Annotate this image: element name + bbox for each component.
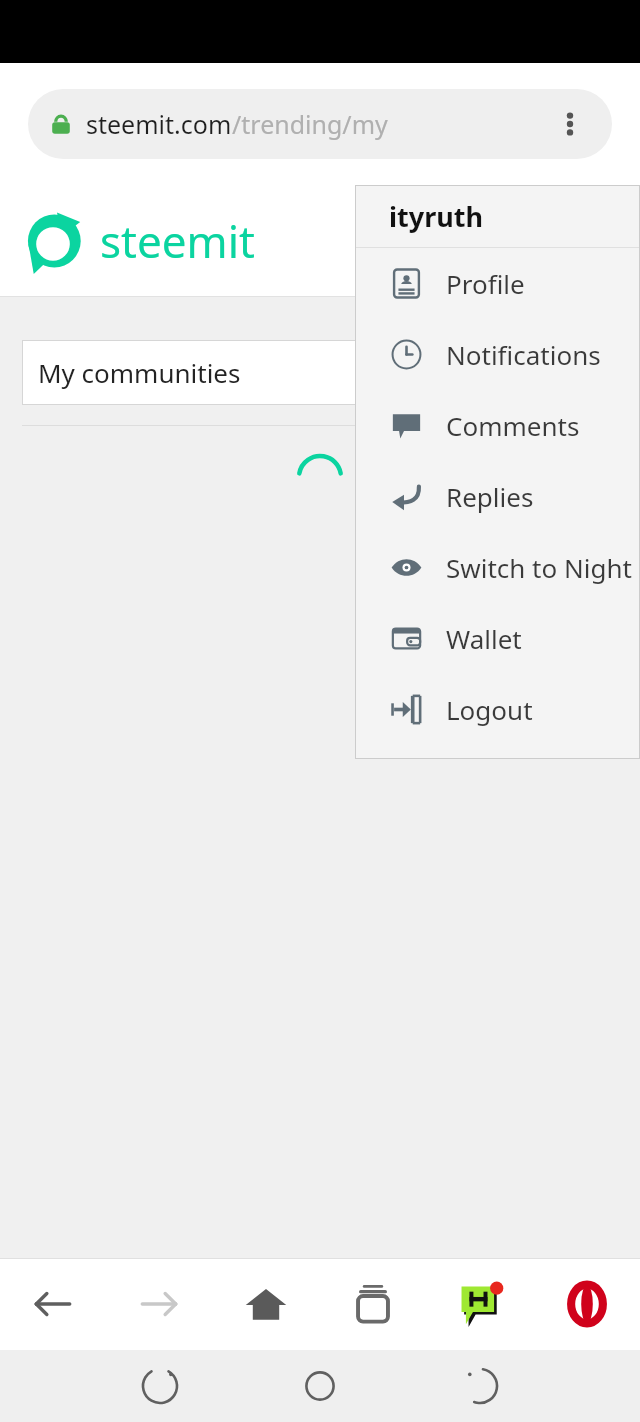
button[interactable]: Home: [240, 1350, 400, 1422]
button[interactable]: Forward: [106, 1258, 212, 1350]
button[interactable]: Switch to Night Mode: [355, 532, 640, 603]
staticText: Profile: [446, 266, 525, 301]
button[interactable]: Home: [212, 1258, 319, 1350]
button[interactable]: Profile: [355, 248, 640, 319]
staticText: Replies: [446, 479, 534, 514]
button[interactable]: More options: [550, 104, 590, 144]
button[interactable]: Comments: [355, 390, 640, 461]
staticText: Comments: [446, 408, 580, 443]
button[interactable]: steemit.com: [28, 89, 612, 159]
button[interactable]: Opera menu: [533, 1258, 640, 1350]
button[interactable]: Wallet: [355, 603, 640, 674]
button[interactable]: Recents: [80, 1350, 240, 1422]
staticText: ityruth: [389, 198, 484, 235]
button[interactable]: Messages: [426, 1258, 533, 1350]
button[interactable]: Notifications: [355, 319, 640, 390]
staticText: Switch to Night Mode: [446, 550, 640, 585]
button[interactable]: Tabs: [319, 1258, 426, 1350]
button[interactable]: Search: [370, 212, 428, 270]
button[interactable]: Steemit home: [20, 208, 255, 274]
staticText: Logout: [446, 692, 533, 727]
button[interactable]: Back: [0, 1258, 106, 1350]
staticText: steemit: [100, 211, 255, 271]
staticText: Notifications: [446, 337, 601, 372]
button[interactable]: Replies: [355, 461, 640, 532]
staticText: Wallet: [446, 621, 522, 656]
button[interactable]: Back: [400, 1350, 560, 1422]
staticText: steemit.com: [86, 107, 232, 141]
button[interactable]: My communities: [22, 340, 618, 405]
staticText: /trending/my: [232, 107, 388, 141]
button[interactable]: Logout: [355, 674, 640, 745]
button[interactable]: Create post: [436, 212, 494, 270]
staticText: My communities: [38, 355, 241, 390]
